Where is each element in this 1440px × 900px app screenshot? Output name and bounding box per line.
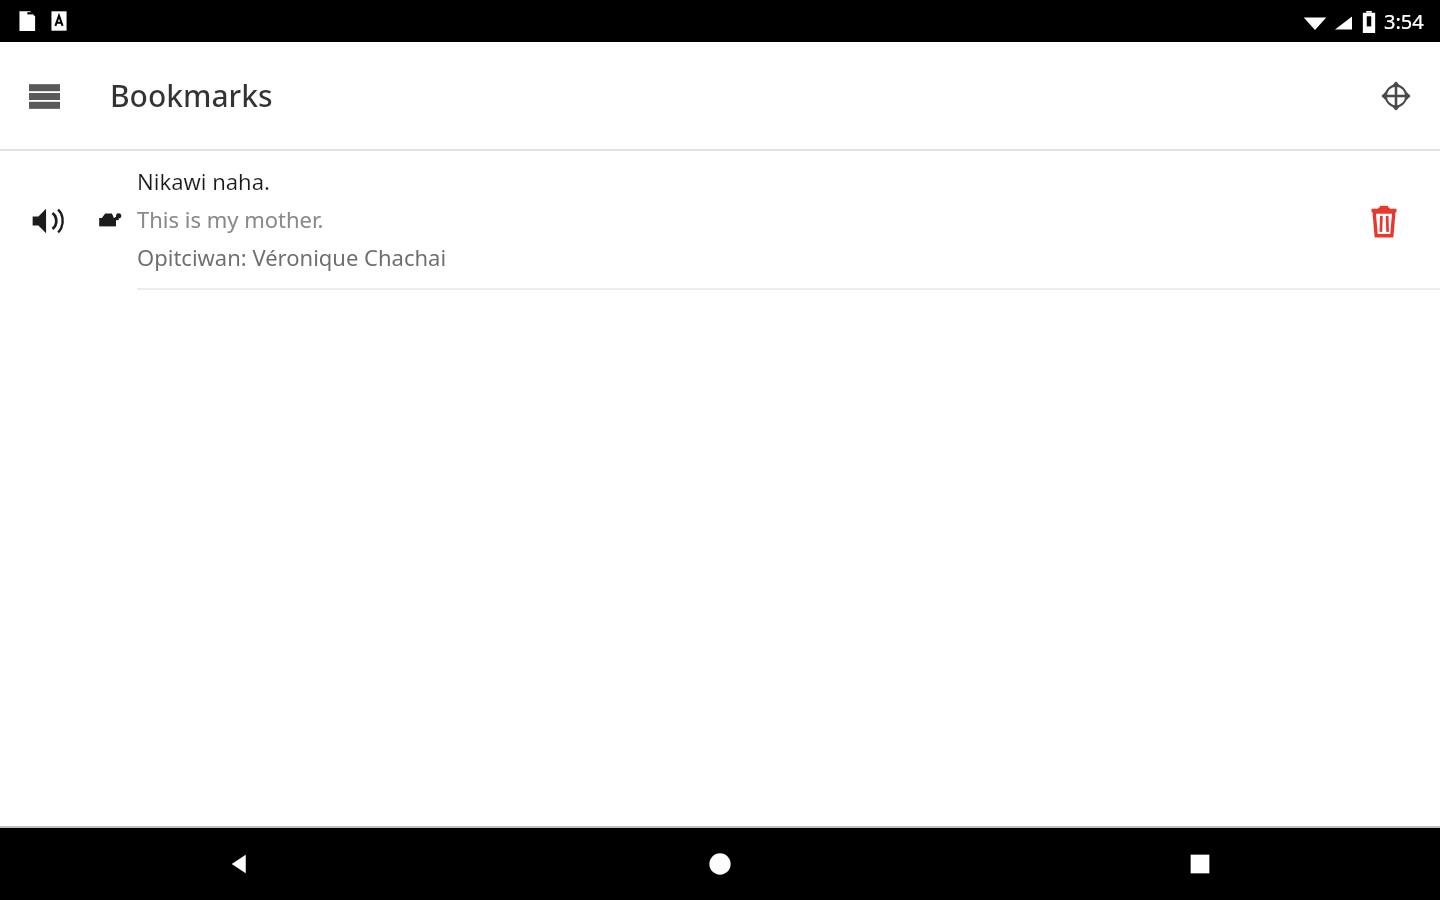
staticText: Bookmarks bbox=[110, 75, 273, 116]
button[interactable]: Play audio bbox=[24, 197, 72, 245]
button[interactable]: Open navigation menu bbox=[10, 62, 78, 130]
button[interactable]: Play audio bbox=[0, 151, 1440, 290]
staticText: 3:54 bbox=[1384, 8, 1424, 35]
button[interactable]: Move bbox=[1362, 62, 1430, 130]
staticText: Nikawi naha. bbox=[137, 166, 270, 196]
button[interactable]: Home bbox=[480, 828, 960, 900]
staticText: This is my mother. bbox=[137, 204, 324, 234]
button[interactable]: Back bbox=[0, 828, 480, 900]
staticText: Opitciwan: Véronique Chachai bbox=[137, 242, 447, 272]
button[interactable]: Recent apps bbox=[960, 828, 1440, 900]
button[interactable]: Details bbox=[88, 199, 132, 243]
button[interactable]: Delete bookmark bbox=[1358, 195, 1410, 247]
